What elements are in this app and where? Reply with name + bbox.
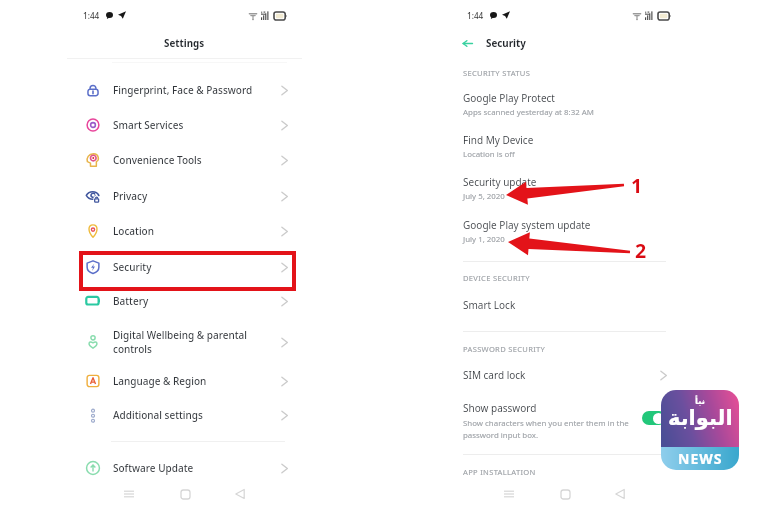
staticText: 2: [634, 237, 646, 264]
staticText: 2: [636, 238, 648, 265]
button[interactable]: SIM card lock: [463, 367, 670, 383]
button[interactable]: Back: [227, 481, 253, 507]
button[interactable]: Find My Device: [463, 133, 663, 160]
staticText: PASSWORD SECURITY: [463, 344, 546, 354]
staticText: 2: [635, 236, 647, 263]
staticText: Google Play Protect: [463, 91, 555, 105]
staticText: 1: [632, 171, 644, 198]
button[interactable]: Recent apps: [116, 481, 142, 507]
button[interactable]: Language & Region: [0, 366, 384, 396]
staticText: 1: [631, 173, 643, 200]
button[interactable]: Home: [172, 481, 198, 507]
button[interactable]: Additional settings: [0, 400, 384, 430]
button[interactable]: Home: [552, 481, 578, 507]
staticText: 1: [630, 173, 642, 200]
staticText: Security: [113, 260, 278, 274]
button[interactable]: Privacy: [0, 181, 384, 211]
staticText: 1:44: [467, 10, 484, 21]
staticText: DEVICE SECURITY: [463, 273, 530, 283]
staticText: 1: [631, 172, 643, 199]
staticText: Convenience Tools: [113, 153, 278, 167]
staticText: Software Update: [113, 461, 278, 475]
staticText: APP INSTALLATION: [463, 467, 536, 477]
staticText: July 1, 2020: [463, 234, 505, 245]
staticText: 1: [630, 171, 642, 198]
staticText: 1: [632, 172, 644, 199]
staticText: Fingerprint, Face & Password: [113, 83, 278, 97]
button[interactable]: Back: [607, 481, 633, 507]
staticText: 1: [631, 171, 643, 198]
button[interactable]: Battery: [0, 286, 384, 316]
staticText: July 5, 2020: [463, 191, 505, 202]
button[interactable]: Digital Wellbeing & parental controls: [0, 327, 384, 357]
staticText: Location is off: [463, 149, 515, 160]
staticText: Find My Device: [463, 133, 534, 147]
staticText: Privacy: [113, 189, 278, 203]
staticText: Smart Lock: [463, 298, 516, 312]
button[interactable]: Google Play Protect: [463, 91, 663, 118]
staticText: Digital Wellbeing & parental controls: [113, 328, 278, 356]
staticText: SIM card lock: [463, 368, 657, 382]
staticText: Location: [113, 224, 278, 238]
staticText: 2: [634, 238, 646, 265]
button[interactable]: Convenience Tools: [0, 145, 384, 175]
other: Back: [462, 38, 473, 49]
button[interactable]: Recent apps: [496, 481, 522, 507]
button[interactable]: Smart Services: [0, 110, 384, 140]
button[interactable]: Software Update: [0, 453, 384, 483]
staticText: SECURITY STATUS: [463, 68, 531, 78]
staticText: Apps scanned yesterday at 8:32 AM: [463, 107, 594, 118]
staticText: Show password: [463, 401, 537, 415]
staticText: NEWS: [678, 449, 723, 468]
button[interactable]: Security: [0, 252, 384, 282]
staticText: Security update: [463, 175, 537, 189]
staticText: Settings: [164, 37, 205, 50]
staticText: 2: [636, 237, 648, 264]
staticText: نبأ: [695, 396, 705, 406]
staticText: البوابة: [668, 406, 733, 430]
button[interactable]: Security update: [463, 175, 663, 202]
staticText: Google Play system update: [463, 218, 591, 232]
staticText: 2: [635, 237, 647, 264]
button[interactable]: Show password: [463, 401, 666, 440]
staticText: Additional settings: [113, 408, 278, 422]
button[interactable]: Location: [0, 216, 384, 246]
staticText: Smart Services: [113, 118, 278, 132]
button[interactable]: Google Play system update: [463, 218, 663, 245]
staticText: 2: [634, 236, 646, 263]
staticText: Battery: [113, 294, 278, 308]
button[interactable]: Fingerprint, Face & Password: [0, 75, 384, 105]
button[interactable]: Show password toggle: [642, 411, 666, 425]
staticText: Security: [486, 37, 526, 50]
button[interactable]: Smart Lock: [463, 298, 663, 312]
button[interactable]: Back: [462, 34, 526, 53]
staticText: 1:44: [83, 10, 100, 21]
staticText: 1: [630, 172, 642, 199]
staticText: Language & Region: [113, 374, 278, 388]
staticText: Show characters when you enter them in t…: [463, 418, 629, 440]
staticText: 2: [635, 238, 647, 265]
staticText: 1: [632, 173, 644, 200]
staticText: 2: [636, 236, 648, 263]
